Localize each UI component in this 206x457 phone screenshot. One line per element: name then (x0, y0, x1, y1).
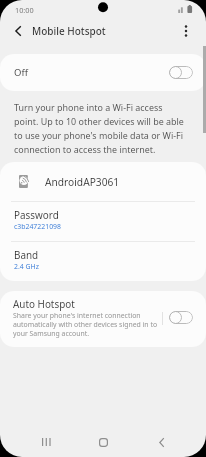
staticText: Share your phone's internet connection a… (13, 311, 161, 338)
staticText: Off (14, 66, 28, 79)
button[interactable]: Toggle (169, 311, 193, 324)
button[interactable]: Auto Hotspot (0, 291, 206, 347)
button[interactable]: Recent apps (30, 426, 62, 457)
button[interactable]: Navigate up (7, 20, 29, 42)
button[interactable]: Off (0, 54, 206, 91)
button[interactable]: Home (87, 426, 119, 457)
button[interactable]: Toggle (169, 66, 193, 79)
staticText: 2.4 GHz (14, 262, 39, 271)
staticText: Band (14, 248, 39, 261)
staticText: Password (14, 208, 59, 221)
staticText: Turn your phone into a Wi-Fi access poin… (14, 101, 188, 156)
staticText: c3b247221098 (14, 222, 61, 231)
button[interactable]: Back (145, 426, 177, 457)
button[interactable]: Password (0, 202, 206, 241)
staticText: 10:00 (15, 5, 34, 15)
staticText: Mobile Hotspot (32, 24, 106, 38)
button[interactable]: Band (0, 242, 206, 281)
button[interactable]: AndroidAP3061 (0, 162, 206, 201)
staticText: AndroidAP3061 (45, 175, 120, 189)
button[interactable]: More options (174, 19, 198, 43)
staticText: Auto Hotspot (13, 297, 75, 310)
